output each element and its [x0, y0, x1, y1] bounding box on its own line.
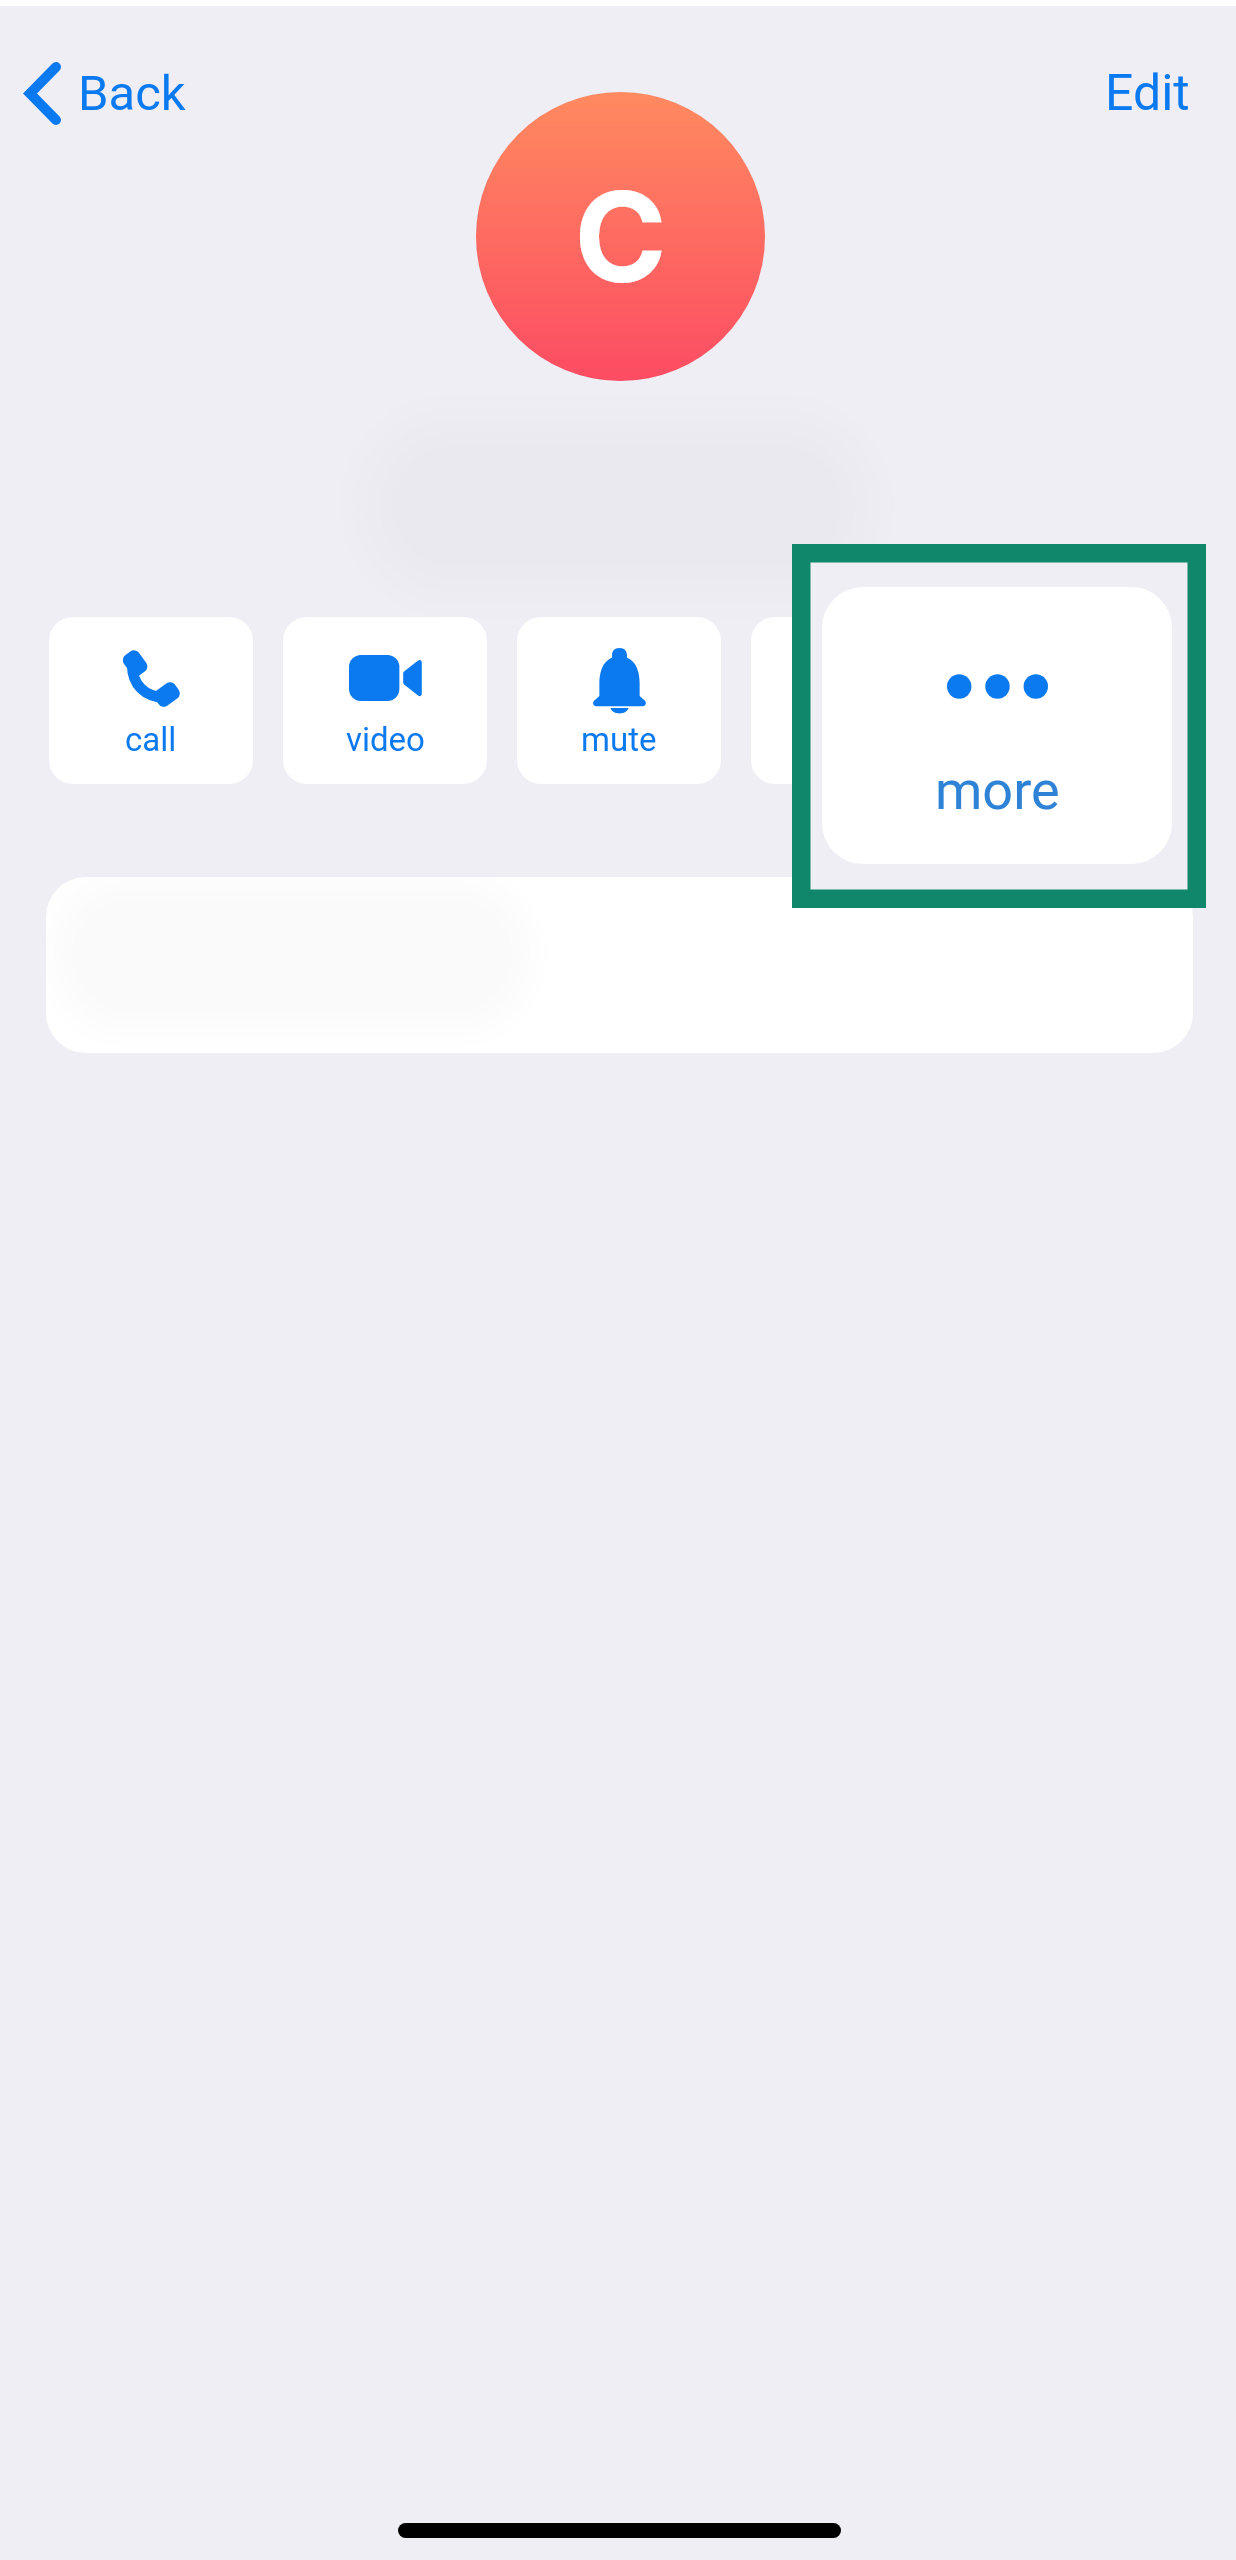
- staticText: Back: [78, 65, 186, 122]
- button[interactable]: more: [751, 617, 955, 784]
- staticText: more: [935, 759, 1060, 822]
- button[interactable]: Contact photo: [476, 92, 765, 381]
- staticText: C: [574, 161, 667, 312]
- button[interactable]: Back: [13, 48, 198, 139]
- button[interactable]: more: [822, 587, 1172, 864]
- staticText: Edit: [1105, 64, 1190, 123]
- button[interactable]: call: [49, 617, 253, 784]
- button[interactable]: Contact details: [46, 877, 1193, 1053]
- button[interactable]: mute: [517, 617, 721, 784]
- button[interactable]: video: [283, 617, 487, 784]
- staticText: mute: [581, 720, 657, 759]
- staticText: video: [346, 720, 425, 759]
- staticText: call: [125, 720, 177, 759]
- button[interactable]: Edit: [1093, 50, 1202, 137]
